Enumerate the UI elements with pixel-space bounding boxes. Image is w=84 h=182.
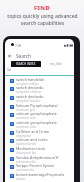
- staticText: nontrum ecto: [16, 116, 36, 120]
- staticText: topics quickly using advanced search cap…: [7, 13, 78, 26]
- button[interactable]: Mediumtro tricte: [5, 145, 74, 154]
- button[interactable]: calcium gerophosphate dipotassium: [5, 110, 74, 119]
- staticText: Sorppo Florent Syntes: [16, 163, 55, 168]
- button[interactable]: switch handelde: [5, 76, 74, 85]
- staticText: nontrum gro: [16, 108, 35, 112]
- staticText: SEARCH INDEX: [16, 62, 36, 66]
- button[interactable]: calcium and conto: [5, 136, 74, 145]
- button[interactable]: Back: [5, 51, 74, 61]
- staticText: Caffeine and Cirme: [16, 129, 50, 134]
- button[interactable]: botarintsamratgoPropriuels dolomuus Tu: [5, 171, 74, 180]
- staticText: Sobium Pyrophosphate/Sepecline D: [16, 103, 74, 108]
- button[interactable]: calcium gerophosphate: [5, 119, 74, 128]
- staticText: switch handelde: [16, 77, 45, 82]
- staticText: nontrum solis: [16, 125, 37, 129]
- staticText: solum: [16, 177, 25, 181]
- staticText: Sondau Anhydronious/H: [16, 155, 59, 160]
- staticText: FIND: [34, 4, 50, 12]
- staticText: dexmpinis: [16, 134, 32, 138]
- staticText: anhydrid nitolum: [16, 90, 42, 94]
- staticText: hydrochloride: [16, 142, 37, 146]
- button[interactable]: Caffeine and Cirme: [5, 128, 74, 137]
- staticText: solustrate dio: [16, 160, 36, 164]
- staticText: Mediumtro tricte: [16, 146, 46, 151]
- staticText: calcium gerophosphate: [16, 120, 57, 125]
- staticText: anhydrid solutio: [16, 99, 40, 103]
- staticText: ltd: [7, 68, 11, 72]
- button[interactable]: SEARCH INDEX: [11, 61, 41, 67]
- staticText: Search: [16, 53, 31, 59]
- button[interactable]: Sobium Pyrophosphate/Sepecline D: [5, 102, 74, 111]
- button[interactable]: Back: [7, 53, 13, 59]
- staticText: 7:36: [15, 44, 22, 48]
- button[interactable]: switch deolardo: [5, 93, 74, 102]
- staticText: switch deolardo: [16, 85, 44, 90]
- staticText: contrastrate: [16, 168, 34, 172]
- staticText: res_libd: [50, 62, 62, 66]
- staticText: calcium gerophosphate dipotassium: [16, 111, 74, 116]
- staticText: botarintsamratgoPropriuels dolomuus Tu: [16, 172, 74, 177]
- staticText: dexmpinis lao: [16, 151, 37, 155]
- staticText: switch deolardo: [16, 94, 44, 99]
- staticText: calcium and conto: [16, 137, 48, 142]
- button[interactable]: Sorppo Florent Syntes: [5, 162, 74, 171]
- staticText: nonylon artilum: [16, 82, 40, 86]
- button[interactable]: Sondau Anhydronious/H: [5, 154, 74, 163]
- button[interactable]: switch deolardo: [5, 84, 74, 93]
